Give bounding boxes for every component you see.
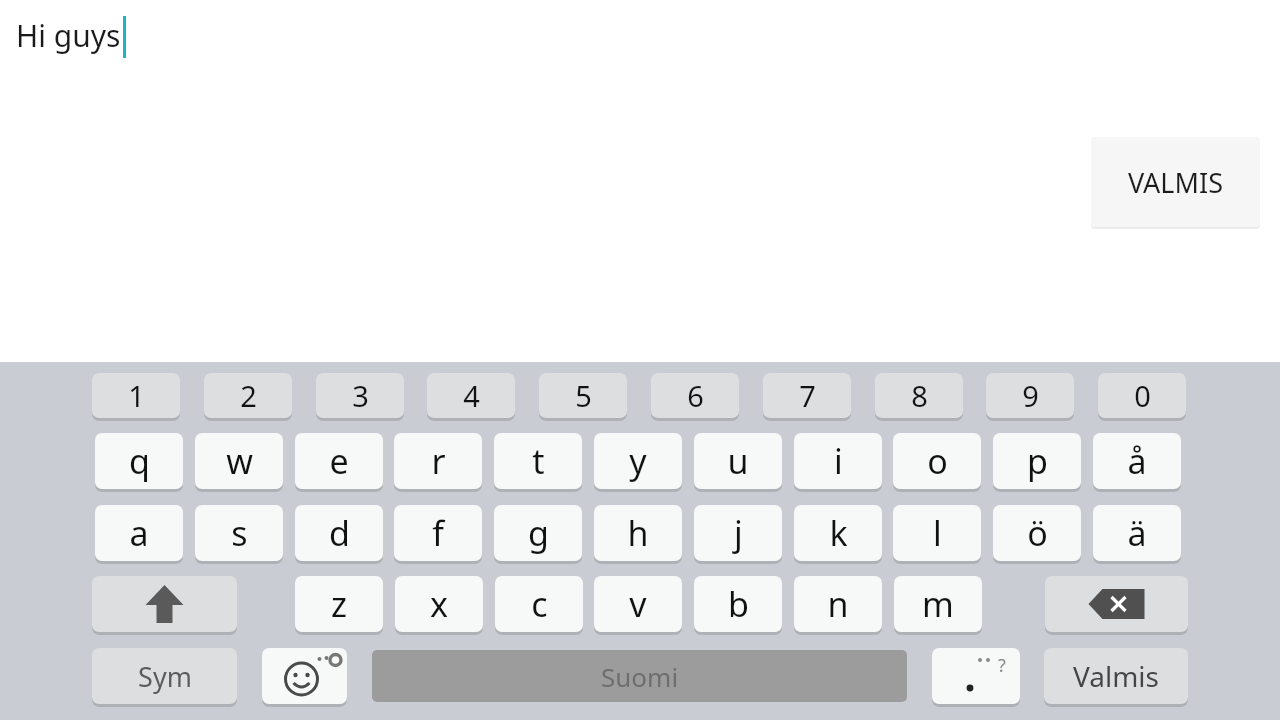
staticText: a [129,510,149,556]
button[interactable]: p [993,433,1081,489]
staticText: å [1127,438,1147,484]
button[interactable]: 9 [986,373,1074,418]
button[interactable]: 8 [875,373,963,418]
button[interactable]: s [195,505,283,561]
staticText: 7 [799,376,816,415]
button[interactable]: l [893,505,981,561]
staticText: o [927,438,948,484]
staticText: h [627,510,649,556]
button[interactable]: q [95,433,183,489]
staticText: ö [1027,510,1048,556]
staticText: 9 [1022,376,1039,415]
staticText: VALMIS [1128,164,1223,201]
button[interactable]: 5 [539,373,627,418]
staticText: 4 [463,376,480,415]
staticText: 1 [128,376,145,415]
button[interactable]: w [195,433,283,489]
button[interactable]: c [495,576,583,632]
staticText: r [431,438,446,484]
button[interactable]: u [694,433,782,489]
button[interactable]: e [295,433,383,489]
button[interactable]: Sym [92,648,237,704]
button[interactable]: 6 [651,373,739,418]
button[interactable]: v [594,576,682,632]
staticText: Suomi [601,659,679,694]
staticText: 6 [687,376,704,415]
button[interactable]: k [794,505,882,561]
button[interactable]: Emoji [262,648,347,704]
button[interactable]: 2 [204,373,292,418]
button[interactable]: Suomi [372,650,907,702]
button[interactable]: ö [993,505,1081,561]
button[interactable]: 1 [92,373,180,418]
staticText: Hi guys [16,15,121,56]
button[interactable]: t [494,433,582,489]
button[interactable]: Backspace [1045,576,1188,632]
button[interactable]: j [694,505,782,561]
staticText: b [728,581,749,627]
staticText: p [1027,438,1048,484]
button[interactable]: z [295,576,383,632]
button[interactable]: n [794,576,882,632]
staticText: 5 [575,376,592,415]
button[interactable]: i [794,433,882,489]
staticText: s [231,510,248,556]
button[interactable]: m [894,576,982,632]
staticText: 0 [1134,376,1151,415]
staticText: z [331,581,347,627]
staticText: Sym [138,658,192,695]
button[interactable]: 0 [1098,373,1186,418]
button[interactable]: a [95,505,183,561]
staticText: m [922,581,954,627]
staticText: t [532,438,545,484]
staticText: e [329,438,349,484]
button[interactable]: g [494,505,582,561]
button[interactable]: ä [1093,505,1181,561]
staticText: Valmis [1073,657,1159,695]
staticText: d [329,510,350,556]
button[interactable]: Shift [92,576,237,632]
button[interactable]: 7 [763,373,851,418]
button[interactable]: 3 [316,373,404,418]
staticText: q [129,438,150,484]
staticText: ? [998,653,1006,673]
staticText: i [834,438,843,484]
staticText: l [933,510,942,556]
staticText: x [430,581,448,627]
staticText: k [829,510,848,556]
staticText: u [727,438,749,484]
button[interactable]: Period [932,648,1020,704]
staticText: w [226,438,253,484]
button[interactable]: å [1093,433,1181,489]
staticText: n [827,581,849,627]
staticText: g [528,510,549,556]
button[interactable]: x [395,576,483,632]
staticText: ä [1127,510,1147,556]
staticText: 8 [911,376,928,415]
button[interactable]: o [893,433,981,489]
button[interactable]: h [594,505,682,561]
staticText: c [531,581,548,627]
button[interactable]: VALMIS [1091,137,1260,227]
staticText: 3 [352,376,369,415]
staticText: f [432,510,444,556]
staticText: 2 [240,376,257,415]
staticText: y [629,438,647,484]
staticText: v [629,581,647,627]
button[interactable]: r [394,433,482,489]
button[interactable]: y [594,433,682,489]
button[interactable]: Hi guys [0,0,1280,362]
button[interactable]: Valmis [1044,648,1188,704]
button[interactable]: f [394,505,482,561]
button[interactable]: d [295,505,383,561]
staticText: j [734,510,743,556]
button[interactable]: b [694,576,782,632]
button[interactable]: 4 [427,373,515,418]
